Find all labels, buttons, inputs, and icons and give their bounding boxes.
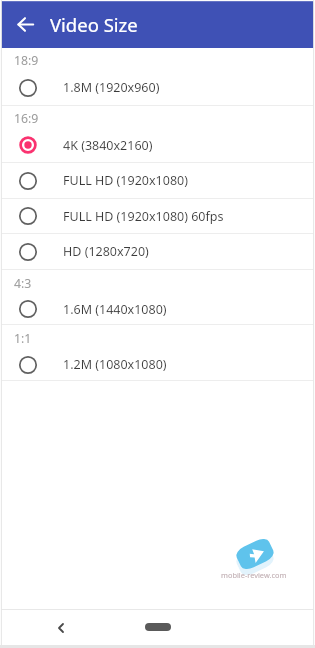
button[interactable]: 1.6M (1440x1080) xyxy=(0,294,315,324)
button[interactable]: 4K (3840x2160) xyxy=(0,128,315,162)
staticText: 16:9 xyxy=(14,110,39,127)
staticText: 1:1 xyxy=(14,330,32,347)
button[interactable]: 1.2M (1080x1080) xyxy=(0,349,315,380)
staticText: 1.2M (1080x1080) xyxy=(63,356,167,373)
staticText: 4K (3840x2160) xyxy=(63,137,153,154)
staticText: Video Size xyxy=(50,12,138,37)
staticText: 1.6M (1440x1080) xyxy=(63,301,167,318)
staticText: mobile-review.com xyxy=(221,570,287,580)
button[interactable]: HD (1280x720) xyxy=(0,234,315,269)
button[interactable]: FULL HD (1920x1080) xyxy=(0,163,315,198)
button[interactable]: 1.8M (1920x960) xyxy=(0,70,315,105)
staticText: 4:3 xyxy=(14,275,32,292)
button[interactable]: Navigate up xyxy=(8,7,42,41)
button[interactable]: Home xyxy=(145,623,171,631)
staticText: FULL HD (1920x1080) xyxy=(63,172,188,189)
staticText: HD (1280x720) xyxy=(63,243,149,260)
button[interactable]: FULL HD (1920x1080) 60fps xyxy=(0,199,315,233)
button[interactable]: Back xyxy=(49,616,73,640)
staticText: 18:9 xyxy=(14,52,39,69)
staticText: FULL HD (1920x1080) 60fps xyxy=(63,208,224,225)
staticText: 1.8M (1920x960) xyxy=(63,79,160,96)
